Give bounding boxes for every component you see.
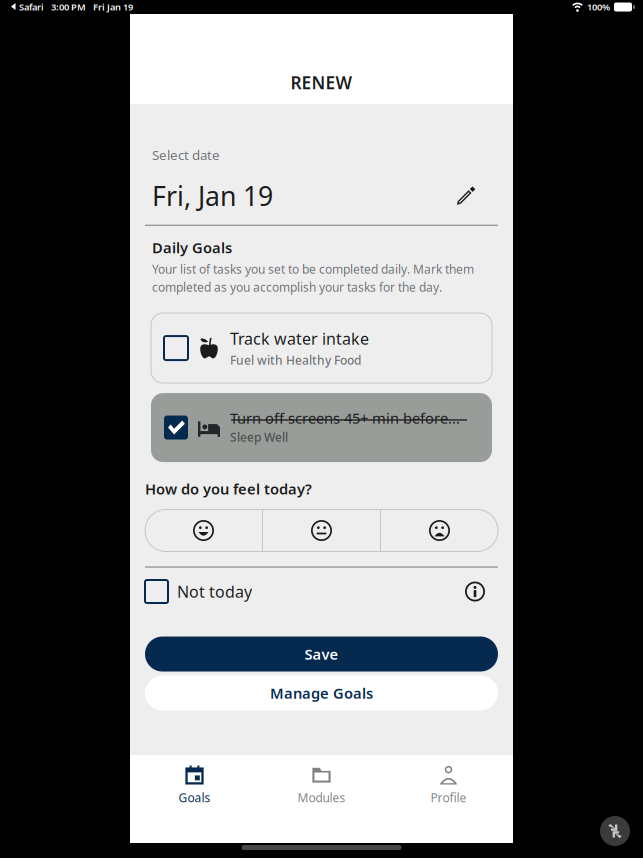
button[interactable]: Turn off screens 45+ min before... xyxy=(145,393,492,462)
staticText: How do you feel today? xyxy=(145,479,312,499)
button[interactable]: Exit full screen xyxy=(600,816,630,846)
button[interactable]: Edit date xyxy=(452,182,480,210)
staticText: Modules xyxy=(297,789,345,805)
button[interactable]: Manage Goals xyxy=(145,675,498,710)
staticText: completed as you accomplish your tasks f… xyxy=(152,279,442,295)
staticText: Not today xyxy=(177,581,252,602)
staticText: RENEW xyxy=(290,71,352,94)
staticText: Fri Jan 19 xyxy=(93,1,133,13)
staticText: Fuel with Healthy Food xyxy=(230,352,361,368)
button[interactable]: Feeling okay xyxy=(263,509,380,551)
staticText: Track water intake xyxy=(230,328,369,349)
button[interactable]: Save xyxy=(145,636,498,671)
button[interactable]: Track water intake xyxy=(145,313,492,383)
staticText: Goals xyxy=(178,789,210,805)
button[interactable]: More information xyxy=(461,577,489,605)
button[interactable]: Modules xyxy=(258,755,385,805)
staticText: Save xyxy=(304,644,338,664)
button[interactable]: Feeling bad xyxy=(381,509,498,551)
staticText: Manage Goals xyxy=(270,683,373,703)
staticText: Daily Goals xyxy=(152,238,232,257)
staticText: Fri, Jan 19 xyxy=(152,178,273,213)
button[interactable]: Feeling good xyxy=(145,509,262,551)
staticText: Your list of tasks you set to be complet… xyxy=(152,261,474,277)
staticText: 3:00 PM xyxy=(51,1,86,13)
staticText: Sleep Well xyxy=(230,429,288,445)
staticText: 100% xyxy=(587,1,610,13)
button[interactable]: Not today xyxy=(145,577,252,605)
staticText: Select date xyxy=(152,146,220,164)
staticText: Safari xyxy=(19,1,44,13)
staticText: Turn off screens 45+ min before... xyxy=(230,408,460,428)
staticText: Profile xyxy=(430,789,466,805)
button[interactable]: Goals xyxy=(131,755,258,805)
button[interactable]: Profile xyxy=(385,755,512,805)
